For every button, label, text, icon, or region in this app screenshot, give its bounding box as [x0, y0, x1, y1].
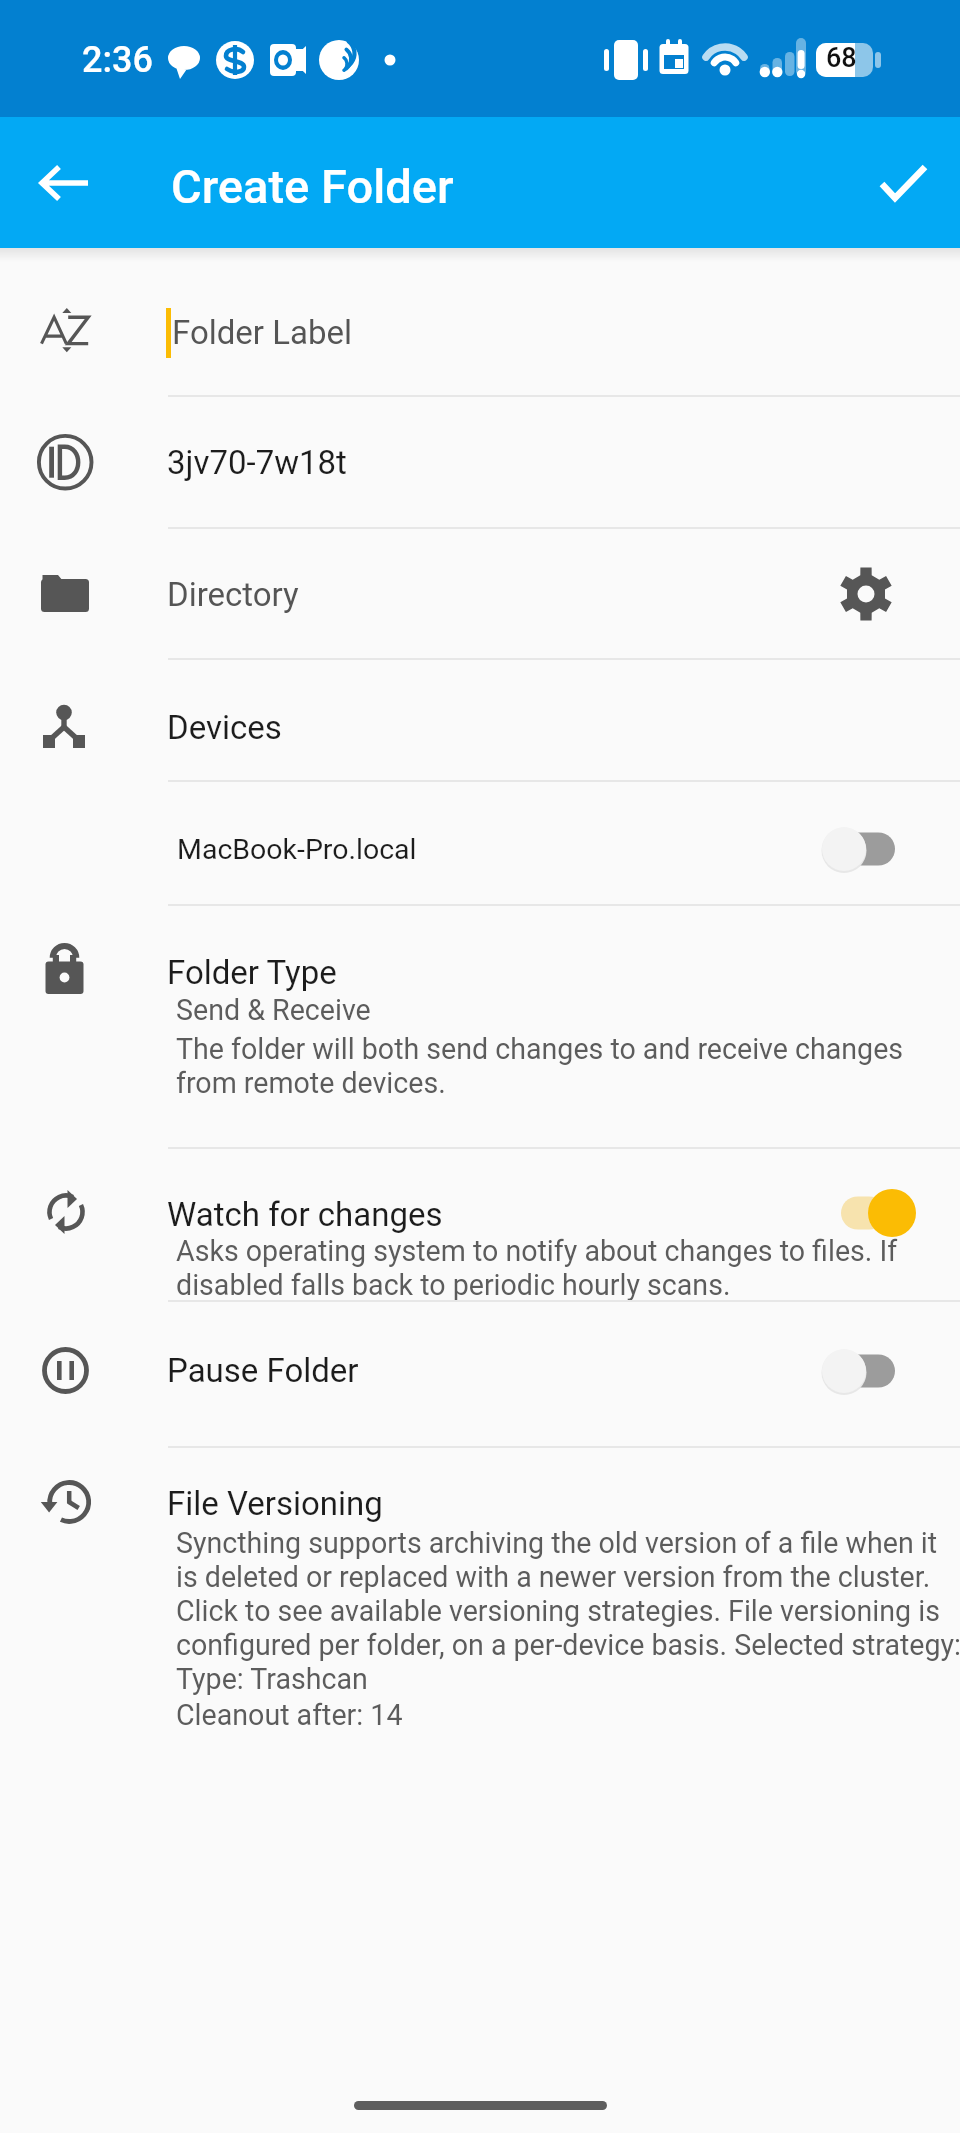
staticText: 68 [826, 42, 857, 74]
button[interactable]: Disabled toggle [810, 818, 916, 880]
button[interactable] [0, 780, 960, 904]
staticText: Syncthing supports archiving the old ver… [176, 1526, 960, 1662]
button[interactable]: Enabled toggle [829, 1182, 935, 1244]
staticText: Cleanout after: 14 [176, 1698, 403, 1732]
staticText: Send & Receive [176, 993, 371, 1027]
button[interactable] [0, 1147, 960, 1300]
staticText: Type: Trashcan [176, 1662, 368, 1696]
staticText: 3jv70-7w18t [167, 443, 347, 482]
button[interactable]: Navigate up [19, 137, 111, 229]
staticText: Directory [167, 575, 299, 614]
staticText: Create Folder [171, 159, 454, 214]
button[interactable] [0, 395, 960, 527]
staticText: Folder Type [167, 953, 337, 992]
button[interactable]: Save folder [857, 137, 949, 229]
button[interactable]: Disabled toggle [810, 1340, 916, 1402]
button[interactable] [0, 658, 960, 780]
staticText: The folder will both send changes to and… [176, 1032, 936, 1100]
staticText: MacBook-Pro.local [177, 833, 417, 866]
button[interactable] [0, 527, 960, 658]
staticText: Folder Label [172, 313, 353, 352]
staticText: Devices [167, 708, 282, 747]
button[interactable] [0, 904, 960, 1147]
staticText: Pause Folder [167, 1351, 359, 1390]
button[interactable] [0, 1446, 960, 1746]
staticText: Watch for changes [167, 1195, 443, 1234]
staticText: File Versioning [167, 1484, 383, 1523]
button[interactable] [0, 1300, 960, 1446]
button[interactable] [0, 250, 960, 396]
staticText: 2:36 [82, 39, 153, 81]
staticText: Asks operating system to notify about ch… [176, 1234, 936, 1302]
